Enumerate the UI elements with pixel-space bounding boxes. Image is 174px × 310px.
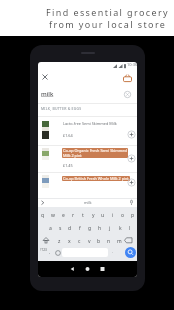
staticText: b bbox=[97, 238, 101, 245]
button[interactable] bbox=[127, 130, 136, 139]
staticText: q bbox=[41, 212, 45, 219]
staticText: , bbox=[49, 249, 51, 254]
staticText: z bbox=[58, 238, 61, 245]
staticText: milk bbox=[84, 200, 92, 205]
staticText: x bbox=[68, 238, 71, 245]
staticText: £1.64 bbox=[63, 133, 73, 138]
staticText: Find essential grocery bbox=[46, 6, 170, 18]
staticText: t bbox=[82, 212, 84, 219]
staticText: k bbox=[119, 225, 122, 232]
staticText: e bbox=[62, 212, 65, 219]
staticText: ?123 bbox=[40, 248, 47, 252]
staticText: y bbox=[92, 212, 95, 219]
staticText: j bbox=[109, 225, 111, 232]
staticText: £1.45 bbox=[63, 163, 73, 168]
staticText: MILK, BUTTER & EGGS bbox=[41, 106, 82, 111]
button[interactable]: Lacto-free Semi Skimmed Milk bbox=[38, 117, 137, 145]
staticText: f bbox=[79, 225, 81, 232]
staticText: m bbox=[117, 238, 122, 245]
button[interactable] bbox=[40, 72, 50, 82]
staticText: 10:36 bbox=[127, 62, 137, 67]
button[interactable] bbox=[127, 178, 136, 187]
staticText: p bbox=[131, 212, 135, 219]
staticText: h bbox=[98, 225, 102, 232]
staticText: r bbox=[72, 212, 75, 219]
staticText: . bbox=[112, 249, 114, 254]
staticText: a bbox=[49, 225, 52, 232]
staticText: c bbox=[78, 238, 81, 245]
button[interactable] bbox=[123, 74, 132, 82]
button[interactable]: Co-op Organic Fresh Semi Skimmed Milk 2 … bbox=[38, 146, 137, 172]
staticText: Lacto-free Semi Skimmed Milk bbox=[63, 121, 117, 126]
staticText: v bbox=[88, 238, 91, 245]
staticText: n bbox=[107, 238, 111, 245]
button[interactable] bbox=[127, 154, 136, 163]
staticText: d bbox=[68, 225, 72, 232]
button[interactable] bbox=[125, 247, 136, 258]
staticText: Co-op British Fresh Whole Milk 2 pint bbox=[63, 176, 129, 181]
staticText: Co-op Organic Fresh Semi Skimmed Milk 2 … bbox=[63, 148, 127, 158]
staticText: from your local store bbox=[49, 18, 167, 30]
staticText: l bbox=[129, 225, 131, 232]
staticText: o bbox=[121, 212, 125, 219]
staticText: milk bbox=[41, 90, 54, 98]
staticText: s bbox=[59, 225, 62, 232]
staticText: i bbox=[112, 212, 114, 219]
staticText: u bbox=[101, 212, 105, 219]
staticText: g bbox=[88, 225, 92, 232]
staticText: w bbox=[51, 212, 55, 219]
button[interactable]: Co-op British Fresh Whole Milk 2 pint bbox=[38, 173, 137, 198]
